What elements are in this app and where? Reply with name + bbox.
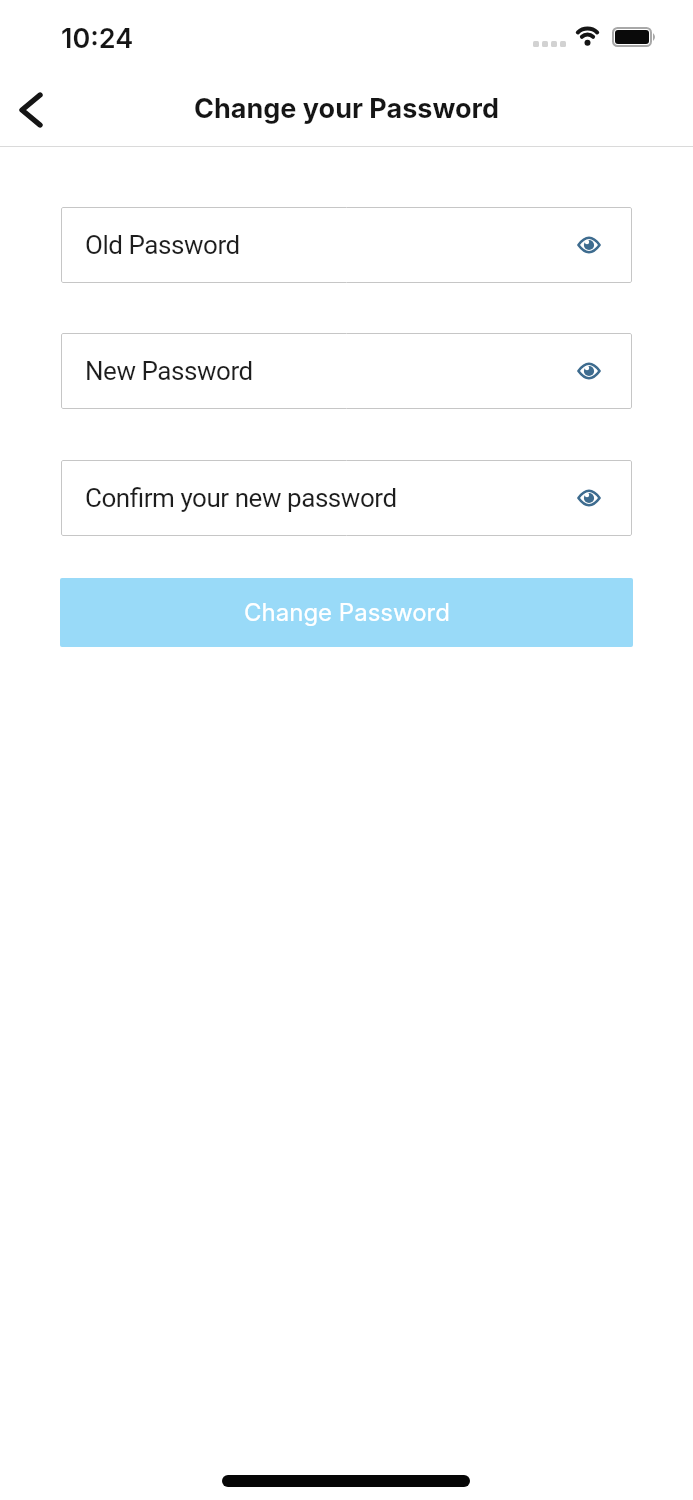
button[interactable]: New Password [61, 333, 632, 409]
button[interactable] [577, 489, 601, 507]
button[interactable] [577, 236, 601, 254]
staticText: Change your Password [194, 92, 499, 125]
button[interactable] [10, 88, 54, 132]
staticText: New Password [85, 356, 253, 386]
button[interactable]: Confirm your new password [61, 460, 632, 536]
staticText: 10:24 [61, 22, 134, 55]
button[interactable]: Old Password [61, 207, 632, 283]
staticText: Confirm your new password [85, 483, 397, 513]
staticText: Change Password [244, 598, 450, 627]
staticText: Old Password [85, 230, 240, 260]
button[interactable] [577, 362, 601, 380]
button[interactable]: Change Password [60, 578, 633, 647]
